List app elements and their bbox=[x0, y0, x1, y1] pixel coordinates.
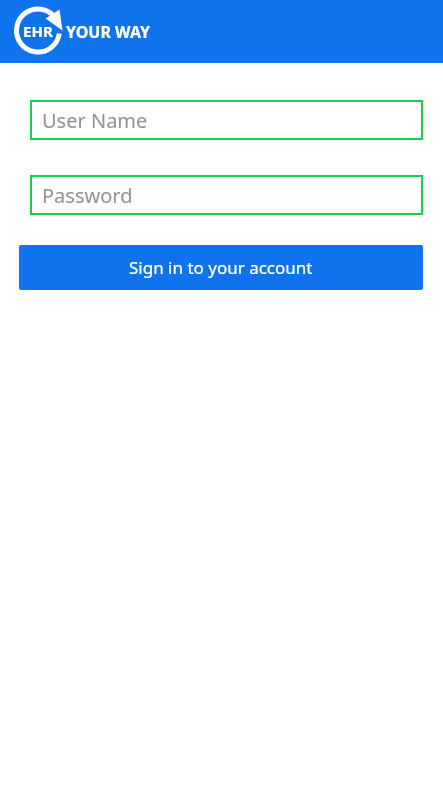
staticText: YOUR WAY bbox=[66, 21, 151, 43]
button[interactable]: Password bbox=[30, 175, 423, 215]
staticText: EHR bbox=[23, 21, 53, 41]
staticText: Password bbox=[42, 182, 133, 209]
button[interactable]: User Name bbox=[30, 100, 423, 140]
staticText: Sign in to your account bbox=[129, 256, 313, 279]
button[interactable]: Sign in to your account bbox=[19, 245, 423, 290]
staticText: User Name bbox=[42, 107, 148, 134]
